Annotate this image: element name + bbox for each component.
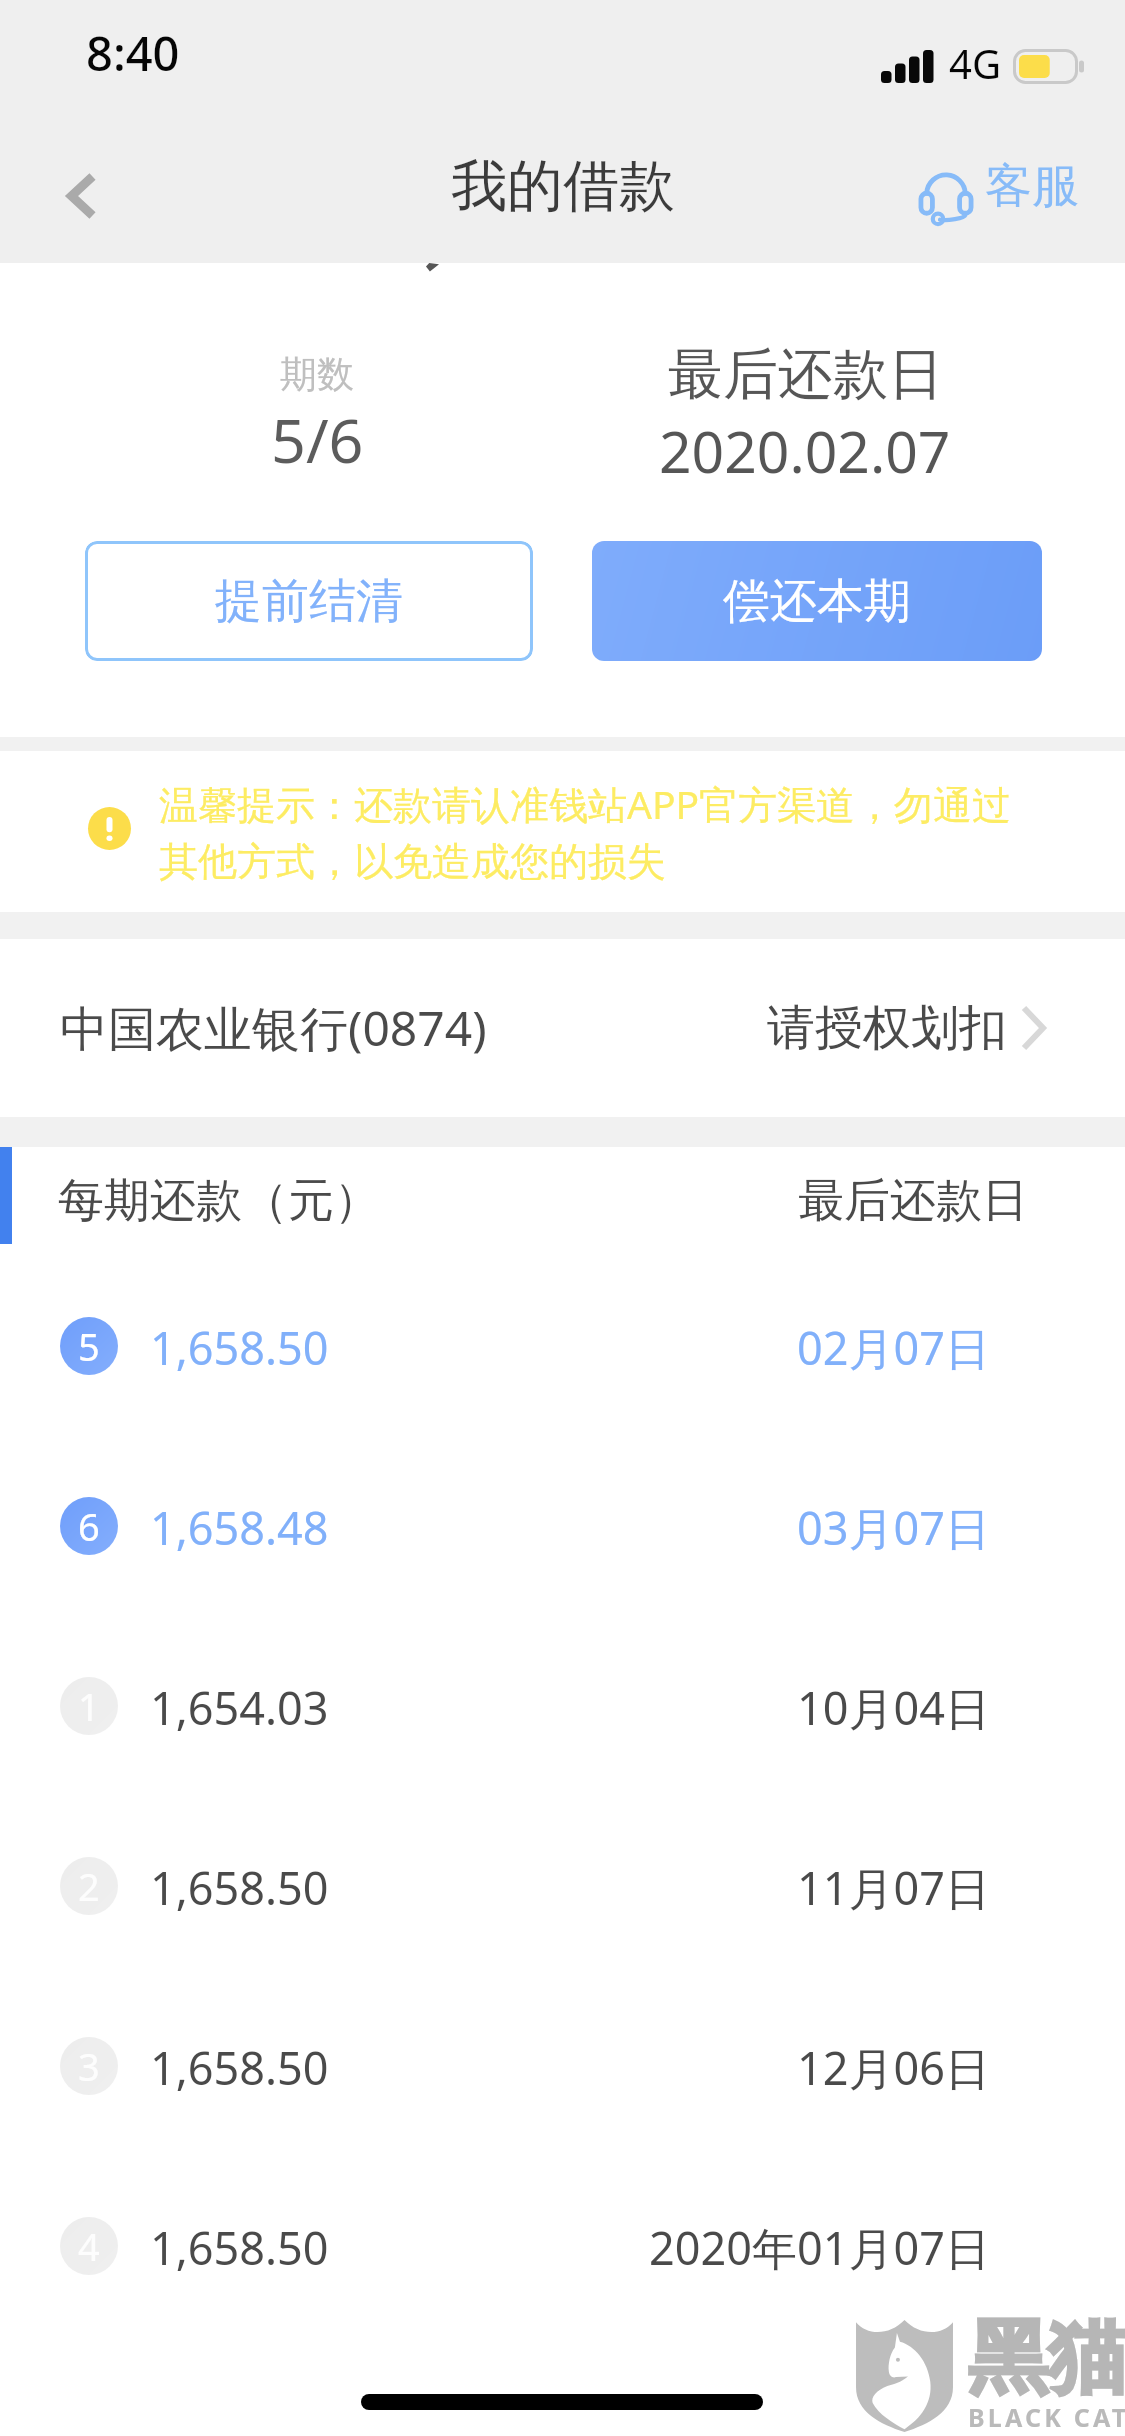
staticText: 2: [78, 1860, 100, 1912]
staticText: 6: [78, 1500, 100, 1552]
button[interactable]: 偿还本期: [592, 541, 1042, 661]
staticText: 黑猫: [968, 2308, 1125, 2409]
staticText: BLACK CAT: [968, 2400, 1125, 2434]
staticText: 1,658.50: [150, 1857, 329, 1915]
button[interactable]: 中国农业银行(0874) 请授权划扣: [0, 939, 1125, 1117]
staticText: 1,658.48: [150, 1497, 329, 1555]
button[interactable]: Back: [0, 110, 166, 263]
staticText: 中国农业银行(0874): [60, 995, 487, 1061]
staticText: 请授权划扣: [767, 998, 1007, 1058]
staticText: 8:40: [86, 21, 180, 85]
staticText: 1,658.50: [150, 2217, 329, 2275]
staticText: 3: [78, 2040, 100, 2092]
staticText: 4G: [949, 36, 1001, 90]
staticText: 4: [78, 2220, 100, 2272]
staticText: 温馨提示：还款请认准钱站APP官方渠道，勿通过 其他方式，以免造成您的损失: [159, 777, 1012, 886]
staticText: 提前结清: [215, 572, 403, 631]
staticText: 2020年01月07日: [649, 2217, 990, 2275]
staticText: 每期还款（元）: [58, 1172, 380, 1230]
staticText: 偿还本期: [723, 572, 911, 631]
staticText: 我的借款: [451, 151, 675, 222]
staticText: 02月07日: [797, 1317, 990, 1375]
button[interactable]: 2: [0, 1857, 1125, 1915]
button[interactable]: 3: [0, 2037, 1125, 2095]
staticText: 最后还款日: [668, 340, 943, 409]
staticText: 1,654.03: [150, 1677, 329, 1735]
button[interactable]: 6: [0, 1497, 1125, 1555]
button[interactable]: 客服 Customer service: [913, 110, 1079, 263]
staticText: 期数: [280, 351, 354, 398]
button[interactable]: 提前结清: [85, 541, 533, 661]
staticText: 03月07日: [797, 1497, 990, 1555]
staticText: 2020.02.07: [659, 412, 951, 490]
staticText: 最后还款日: [798, 1172, 1028, 1230]
staticText: 客服: [985, 157, 1079, 216]
button[interactable]: 1: [0, 1677, 1125, 1735]
staticText: 1: [78, 1680, 100, 1732]
button[interactable]: 5: [0, 1317, 1125, 1375]
button[interactable]: 4: [0, 2217, 1125, 2275]
staticText: 10月04日: [797, 1677, 990, 1735]
staticText: 5/6: [271, 398, 364, 481]
staticText: 5: [78, 1320, 100, 1372]
staticText: 1,658.50: [150, 2037, 329, 2095]
staticText: 1,658.50: [150, 1317, 329, 1375]
staticText: 11月07日: [797, 1857, 990, 1915]
staticText: 12月06日: [797, 2037, 990, 2095]
